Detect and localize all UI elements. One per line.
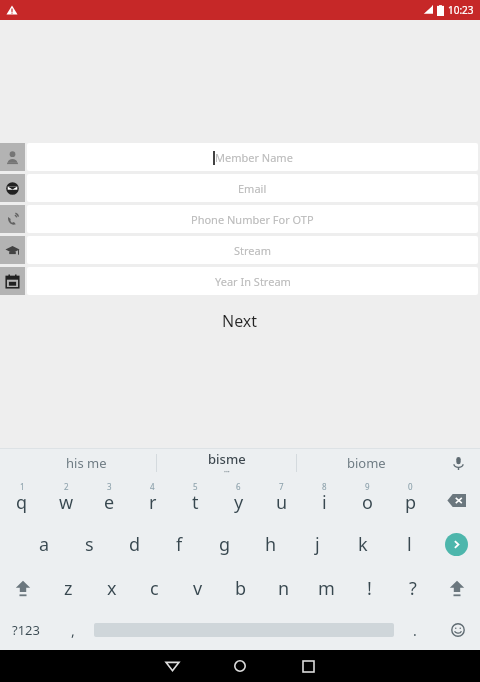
staticText: c: [150, 576, 159, 601]
staticText: w: [59, 490, 74, 515]
staticText: k: [358, 532, 368, 557]
staticText: o: [362, 490, 373, 515]
staticText: g: [219, 532, 231, 557]
staticText: Next: [222, 310, 258, 332]
button[interactable]: m: [305, 566, 348, 610]
staticText: Year In Stream: [215, 274, 291, 289]
button[interactable]: 9: [346, 478, 389, 522]
button[interactable]: z: [46, 566, 90, 610]
staticText: i: [322, 490, 327, 515]
staticText: ?: [409, 576, 417, 601]
button[interactable]: Next: [0, 304, 480, 338]
staticText: .: [413, 621, 417, 640]
button[interactable]: b: [219, 566, 262, 610]
staticText: 9: [365, 481, 370, 492]
button[interactable]: a: [22, 522, 67, 566]
button[interactable]: Shift: [0, 566, 46, 610]
staticText: Stream: [234, 243, 271, 258]
button[interactable]: ?123: [0, 610, 52, 650]
button[interactable]: h: [248, 522, 294, 566]
staticText: 2: [64, 481, 69, 492]
button[interactable]: Recent apps: [280, 650, 336, 682]
button[interactable]: Enter: [432, 522, 480, 566]
button[interactable]: 4: [131, 478, 174, 522]
button[interactable]: Backspace: [432, 478, 480, 522]
staticText: l: [407, 532, 412, 557]
button[interactable]: Voice input: [436, 448, 480, 478]
button[interactable]: n: [262, 566, 305, 610]
button[interactable]: 7: [260, 478, 303, 522]
staticText: bisme: [208, 450, 246, 468]
button[interactable]: !: [348, 566, 391, 610]
staticText: 10:23: [448, 3, 474, 17]
button[interactable]: Stream: [0, 236, 480, 264]
staticText: h: [265, 532, 277, 557]
staticText: 3: [107, 481, 112, 492]
button[interactable]: bisme: [157, 448, 296, 478]
staticText: z: [64, 576, 73, 601]
staticText: Email: [238, 181, 267, 196]
staticText: v: [193, 576, 203, 601]
staticText: b: [235, 576, 247, 601]
button[interactable]: 3: [88, 478, 131, 522]
staticText: e: [104, 490, 115, 515]
staticText: d: [129, 532, 141, 557]
staticText: 6: [236, 481, 241, 492]
staticText: Phone Number For OTP: [191, 212, 314, 227]
staticText: q: [16, 490, 28, 515]
staticText: Member Name: [215, 150, 293, 165]
staticText: u: [276, 490, 288, 515]
staticText: s: [85, 532, 94, 557]
button[interactable]: biome: [297, 448, 436, 478]
button[interactable]: 1: [0, 478, 44, 522]
button[interactable]: d: [112, 522, 157, 566]
button[interactable]: v: [176, 566, 219, 610]
button[interactable]: Home: [212, 650, 268, 682]
staticText: 4: [150, 481, 155, 492]
staticText: 0: [408, 481, 413, 492]
button[interactable]: .: [394, 610, 436, 650]
button[interactable]: x: [90, 566, 133, 610]
button[interactable]: j: [294, 522, 340, 566]
staticText: 8: [322, 481, 327, 492]
button[interactable]: ?: [391, 566, 434, 610]
button[interactable]: Member Name: [0, 143, 480, 171]
button[interactable]: ,: [52, 610, 94, 650]
staticText: n: [278, 576, 290, 601]
button[interactable]: Shift: [434, 566, 480, 610]
button[interactable]: Emoji: [436, 610, 480, 650]
staticText: m: [318, 576, 335, 601]
staticText: 7: [279, 481, 284, 492]
button[interactable]: 2: [44, 478, 88, 522]
staticText: p: [405, 490, 417, 515]
staticText: r: [149, 490, 157, 515]
button[interactable]: his me: [16, 448, 156, 478]
button[interactable]: 0: [389, 478, 432, 522]
button[interactable]: c: [133, 566, 176, 610]
button[interactable]: Back: [144, 650, 200, 682]
staticText: •••: [224, 469, 230, 476]
button[interactable]: s: [67, 522, 112, 566]
button[interactable]: 8: [303, 478, 346, 522]
button[interactable]: k: [340, 522, 386, 566]
button[interactable]: f: [157, 522, 202, 566]
button[interactable]: l: [386, 522, 432, 566]
button[interactable]: 6: [217, 478, 260, 522]
staticText: x: [107, 576, 117, 601]
staticText: t: [192, 490, 199, 515]
button[interactable]: 5: [174, 478, 217, 522]
staticText: y: [234, 490, 244, 515]
button[interactable]: Year In Stream: [0, 267, 480, 295]
staticText: f: [176, 532, 183, 557]
staticText: his me: [66, 454, 107, 472]
button[interactable]: Email: [0, 174, 480, 202]
button[interactable]: g: [202, 522, 248, 566]
staticText: biome: [347, 454, 386, 472]
staticText: ?123: [12, 621, 40, 639]
staticText: a: [39, 532, 50, 557]
staticText: !: [367, 576, 372, 601]
staticText: 1: [20, 481, 25, 492]
staticText: j: [315, 532, 320, 557]
button[interactable]: Phone Number For OTP: [0, 205, 480, 233]
